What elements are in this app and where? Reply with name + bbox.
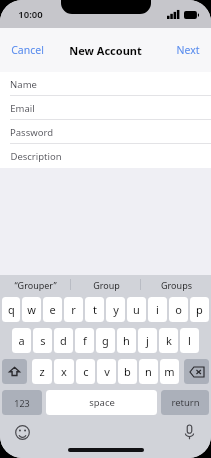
button[interactable]: Groups — [141, 275, 211, 294]
button[interactable]: Emoji — [13, 423, 31, 441]
button[interactable]: Next — [165, 35, 211, 65]
button[interactable]: Name — [0, 72, 211, 96]
staticText: Password — [10, 126, 53, 139]
button[interactable]: f — [75, 328, 94, 353]
staticText: Description — [10, 150, 62, 163]
button[interactable]: Shift — [2, 359, 27, 384]
button[interactable]: w — [22, 297, 41, 322]
button[interactable]: v — [97, 359, 116, 384]
staticText: x — [61, 364, 67, 379]
staticText: c — [83, 364, 89, 379]
button[interactable]: g — [96, 328, 115, 353]
staticText: f — [83, 333, 87, 348]
button[interactable]: d — [54, 328, 73, 353]
button[interactable]: x — [54, 359, 74, 384]
button[interactable]: Email — [0, 96, 211, 120]
button[interactable]: p — [190, 297, 209, 322]
staticText: return — [171, 396, 200, 409]
button[interactable]: m — [160, 359, 179, 384]
staticText: h — [123, 333, 130, 348]
staticText: g — [102, 333, 109, 348]
button[interactable]: b — [118, 359, 137, 384]
staticText: v — [104, 364, 110, 379]
staticText: “Grouper” — [14, 279, 57, 291]
button[interactable]: e — [43, 297, 62, 322]
button[interactable]: Dictation — [180, 423, 198, 441]
staticText: l — [188, 333, 191, 348]
button[interactable]: i — [148, 297, 167, 322]
button[interactable]: k — [159, 328, 178, 353]
button[interactable]: o — [169, 297, 188, 322]
button[interactable]: r — [64, 297, 83, 322]
button[interactable]: space — [46, 390, 157, 415]
button[interactable]: Backspace — [184, 359, 209, 384]
button[interactable]: s — [33, 328, 52, 353]
button[interactable]: n — [139, 359, 158, 384]
staticText: space — [89, 396, 115, 409]
staticText: o — [175, 302, 182, 317]
staticText: m — [164, 364, 175, 379]
staticText: Next — [176, 43, 200, 57]
staticText: a — [18, 333, 25, 348]
button[interactable]: Group — [71, 275, 141, 294]
button[interactable]: return — [161, 390, 209, 415]
staticText: t — [93, 302, 97, 317]
staticText: 10:00 — [18, 8, 43, 21]
button[interactable]: a — [12, 328, 31, 353]
staticText: Email — [10, 102, 35, 115]
button[interactable]: “Grouper” — [0, 275, 71, 294]
staticText: s — [40, 333, 46, 348]
button[interactable]: u — [127, 297, 146, 322]
button[interactable]: j — [138, 328, 157, 353]
button[interactable]: Password — [0, 120, 211, 144]
staticText: e — [49, 302, 56, 317]
staticText: z — [39, 364, 45, 379]
staticText: w — [27, 302, 36, 317]
button[interactable]: q — [2, 297, 20, 322]
staticText: u — [133, 302, 140, 317]
button[interactable]: c — [76, 359, 95, 384]
staticText: Groups — [161, 279, 192, 291]
staticText: b — [124, 364, 131, 379]
button[interactable]: l — [180, 328, 199, 353]
staticText: Name — [10, 78, 37, 91]
staticText: Cancel — [11, 43, 44, 57]
button[interactable]: z — [32, 359, 52, 384]
button[interactable]: 123 — [2, 390, 42, 415]
staticText: r — [71, 302, 76, 317]
button[interactable]: Description — [0, 144, 211, 168]
staticText: n — [145, 364, 152, 379]
staticText: q — [8, 302, 15, 317]
staticText: j — [146, 333, 149, 348]
staticText: k — [166, 333, 172, 348]
staticText: 123 — [14, 397, 30, 409]
button[interactable]: t — [85, 297, 104, 322]
staticText: p — [196, 302, 203, 317]
button[interactable]: y — [106, 297, 125, 322]
staticText: y — [113, 302, 119, 317]
staticText: i — [156, 302, 159, 317]
staticText: New Account — [69, 43, 142, 58]
staticText: Group — [93, 279, 120, 291]
staticText: d — [60, 333, 67, 348]
button[interactable]: Cancel — [0, 35, 55, 65]
button[interactable]: h — [117, 328, 136, 353]
